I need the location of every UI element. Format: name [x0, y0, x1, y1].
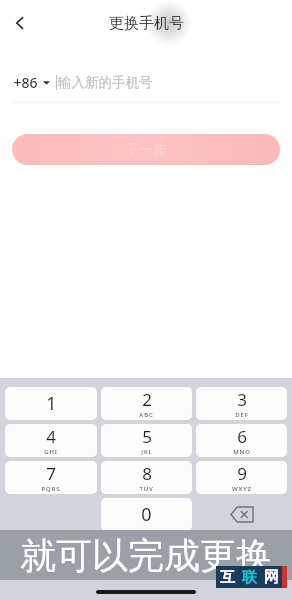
- button[interactable]: 7: [5, 461, 97, 494]
- staticText: 4: [46, 425, 56, 448]
- staticText: 6: [237, 425, 247, 448]
- staticText: DEF: [235, 411, 249, 419]
- staticText: 下一步: [125, 141, 167, 159]
- button[interactable]: 0: [101, 498, 192, 531]
- button[interactable]: 3: [196, 387, 287, 420]
- button[interactable]: 2: [101, 387, 192, 420]
- staticText: WXYZ: [232, 485, 252, 493]
- staticText: 互: [220, 568, 235, 587]
- button[interactable]: 4: [5, 424, 97, 457]
- button[interactable]: 1: [5, 387, 97, 420]
- staticText: 5: [142, 425, 152, 448]
- staticText: 输入新的手机号: [58, 74, 153, 91]
- staticText: JKL: [141, 448, 153, 456]
- staticText: ABC: [139, 411, 154, 419]
- button[interactable]: 输入新的手机号: [58, 74, 279, 91]
- staticText: PQRS: [41, 485, 61, 493]
- staticText: MNO: [233, 448, 251, 456]
- button[interactable]: Delete: [196, 498, 287, 531]
- button[interactable]: 9: [196, 461, 287, 494]
- staticText: TUV: [139, 485, 154, 493]
- staticText: GHI: [44, 448, 58, 456]
- button[interactable]: Blank: [5, 498, 97, 531]
- staticText: 9: [237, 462, 247, 485]
- button[interactable]: 下一步: [12, 134, 280, 165]
- staticText: 0: [141, 502, 152, 527]
- staticText: 就可以完成更换: [20, 533, 272, 578]
- staticText: 2: [142, 388, 152, 411]
- staticText: 7: [46, 462, 56, 485]
- staticText: 网: [264, 568, 279, 587]
- staticText: +86: [13, 73, 38, 92]
- staticText: 3: [237, 388, 247, 411]
- button[interactable]: Back: [0, 3, 40, 43]
- staticText: 8: [142, 462, 152, 485]
- button[interactable]: 8: [101, 461, 192, 494]
- staticText: 更换手机号: [109, 14, 184, 33]
- button[interactable]: Country code +86: [13, 73, 50, 92]
- staticText: 联: [242, 568, 257, 587]
- staticText: 1: [46, 391, 57, 416]
- button[interactable]: 5: [101, 424, 192, 457]
- button[interactable]: 6: [196, 424, 287, 457]
